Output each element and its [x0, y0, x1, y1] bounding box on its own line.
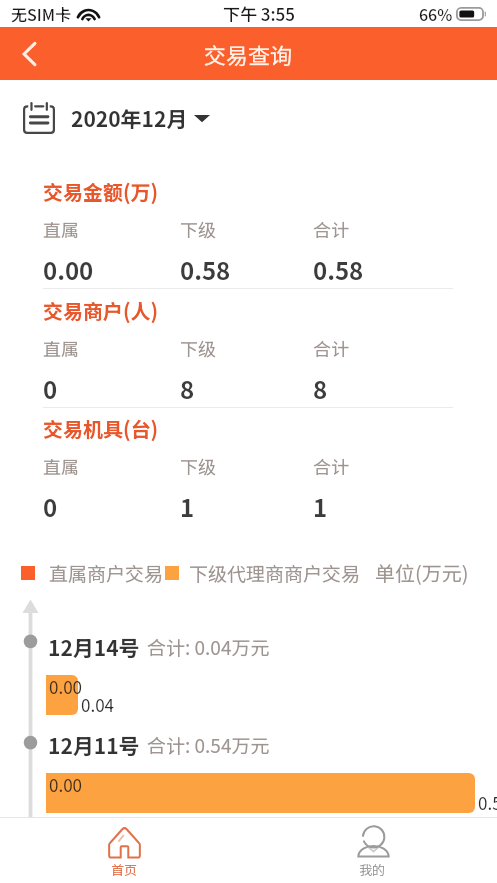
staticText: 0.5 — [478, 790, 497, 815]
staticText: 直属 — [43, 335, 79, 361]
staticText: 0.58 — [313, 252, 364, 287]
staticText: 0.00 — [49, 674, 83, 699]
button[interactable]: 我的 — [248, 818, 497, 883]
staticText: 我的 — [359, 860, 386, 878]
staticText: 交易金额(万) — [43, 177, 159, 206]
staticText: 合计 — [313, 335, 349, 361]
staticText: 66% — [419, 2, 453, 25]
staticText: 直属 — [43, 216, 79, 242]
button[interactable]: Back — [0, 27, 58, 80]
staticText: 单位(万元) — [375, 558, 469, 587]
staticText: 无SIM卡 — [11, 2, 71, 25]
staticText: 直属 — [43, 453, 79, 479]
staticText: 0.04 — [81, 692, 115, 717]
staticText: 合计 — [313, 216, 349, 242]
staticText: 合计: 0.54万元 — [147, 731, 270, 759]
staticText: 0 — [43, 489, 58, 524]
staticText: 0.58 — [180, 252, 231, 287]
staticText: 下级 — [180, 216, 216, 242]
staticText: 1 — [180, 489, 195, 524]
staticText: 8 — [313, 371, 328, 406]
staticText: 12月11号 — [48, 730, 140, 760]
staticText: 下级代理商商户交易 — [189, 559, 361, 587]
staticText: 交易查询 — [204, 38, 293, 70]
staticText: 8 — [180, 371, 195, 406]
staticText: 下级 — [180, 335, 216, 361]
staticText: 12月14号 — [48, 632, 140, 662]
staticText: 1 — [313, 489, 328, 524]
staticText: 0.00 — [49, 772, 83, 797]
button[interactable]: 2020年12月 — [23, 102, 220, 134]
staticText: 0 — [43, 371, 58, 406]
staticText: 交易商户(人) — [43, 296, 159, 325]
staticText: 合计: 0.04万元 — [147, 633, 270, 661]
staticText: 0.00 — [43, 252, 94, 287]
staticText: 下午 3:55 — [223, 1, 295, 26]
staticText: 合计 — [313, 453, 349, 479]
staticText: 首页 — [111, 860, 138, 878]
staticText: 2020年12月 — [71, 103, 188, 133]
staticText: 下级 — [180, 453, 216, 479]
staticText: 直属商户交易 — [49, 559, 164, 587]
staticText: 交易机具(台) — [43, 414, 159, 443]
button[interactable]: 首页 — [0, 818, 248, 883]
